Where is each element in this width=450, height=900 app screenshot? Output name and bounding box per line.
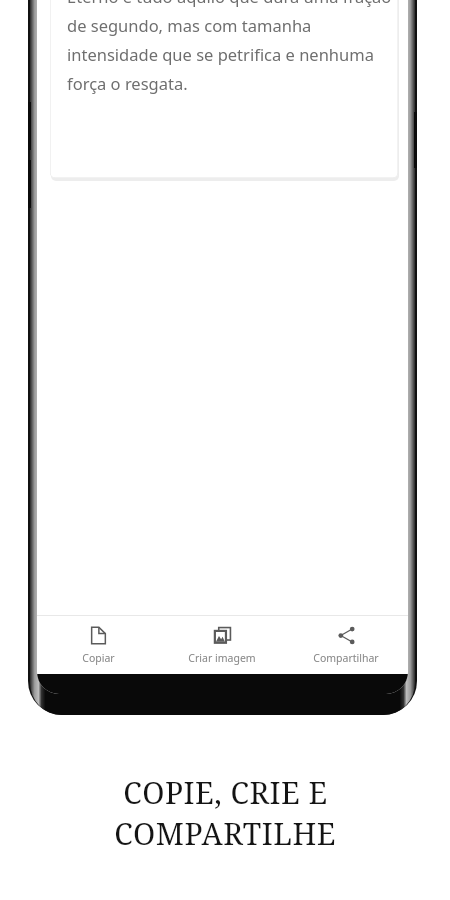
staticText: COPIE, CRIE E xyxy=(123,772,328,813)
staticText: Compartilhar xyxy=(313,651,379,665)
button[interactable]: Copiar xyxy=(37,622,160,669)
other: Criar imagem xyxy=(213,626,232,645)
button[interactable]: Criar imagem xyxy=(160,622,284,669)
button[interactable]: Compartilhar xyxy=(284,622,408,669)
staticText: COMPARTILHE xyxy=(114,813,336,854)
button[interactable]: Eterno é tudo aquilo que dura uma fração… xyxy=(50,0,398,178)
staticText: Copiar xyxy=(82,651,115,665)
other: Compartilhar xyxy=(337,626,356,645)
staticText: Criar imagem xyxy=(188,651,256,665)
other: Copiar xyxy=(89,626,108,645)
staticText: Eterno é tudo aquilo que dura uma fração… xyxy=(67,0,397,95)
